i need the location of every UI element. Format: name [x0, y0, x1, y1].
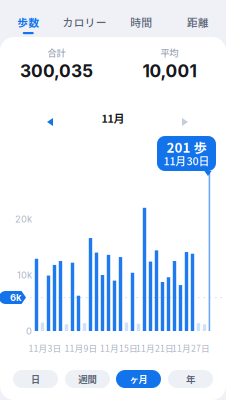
- staticText: 合計: [47, 46, 65, 59]
- button[interactable]: 日: [13, 370, 58, 388]
- staticText: 距離: [187, 14, 209, 30]
- staticText: 10k: [17, 269, 32, 281]
- staticText: 日: [31, 372, 40, 386]
- button[interactable]: 週間: [65, 370, 110, 388]
- staticText: ヶ月: [129, 372, 147, 386]
- staticText: 11月30日: [163, 153, 209, 168]
- staticText: 歩数: [17, 14, 39, 30]
- staticText: 6k: [10, 292, 21, 303]
- staticText: 201 歩: [166, 137, 206, 157]
- staticText: 11月9日: [64, 342, 97, 354]
- staticText: 時間: [130, 14, 152, 30]
- button[interactable]: ヶ月: [116, 370, 161, 388]
- staticText: 平均: [160, 46, 178, 59]
- staticText: 0: [26, 325, 32, 337]
- staticText: 11月3日: [28, 342, 61, 354]
- button[interactable]: カロリー: [56, 0, 113, 37]
- staticText: 週間: [78, 372, 96, 386]
- staticText: カロリー: [63, 14, 107, 30]
- staticText: 11月21日: [136, 342, 174, 354]
- button[interactable]: Next month: [173, 109, 197, 135]
- staticText: 11月27日: [172, 342, 210, 354]
- staticText: 10,001: [142, 60, 196, 81]
- button[interactable]: Previous month: [38, 109, 62, 135]
- button[interactable]: 距離: [169, 0, 226, 37]
- staticText: 20k: [15, 213, 32, 225]
- button[interactable]: 年: [168, 370, 213, 388]
- staticText: 年: [186, 372, 195, 386]
- staticText: 11月: [101, 110, 124, 126]
- button[interactable]: 時間: [113, 0, 169, 37]
- button[interactable]: 歩数: [0, 0, 56, 37]
- staticText: 11月15日: [100, 342, 138, 354]
- staticText: 300,035: [20, 60, 93, 81]
